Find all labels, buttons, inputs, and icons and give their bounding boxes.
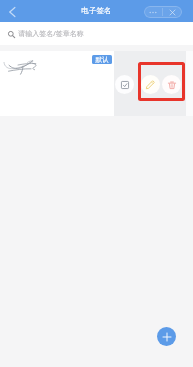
- button[interactable]: Delete: [162, 75, 181, 94]
- staticText: 默认: [95, 56, 109, 64]
- button[interactable]: Select: [115, 75, 134, 94]
- staticText: 电子签名: [81, 6, 112, 16]
- button[interactable]: Add signature: [157, 327, 176, 346]
- button[interactable]: Edit: [141, 75, 160, 94]
- button[interactable]: [0, 51, 114, 116]
- button[interactable]: Back: [4, 4, 20, 20]
- button[interactable]: Close: [163, 6, 182, 18]
- staticText: 请输入签名/签章名称: [18, 29, 84, 39]
- button[interactable]: More: [144, 6, 162, 18]
